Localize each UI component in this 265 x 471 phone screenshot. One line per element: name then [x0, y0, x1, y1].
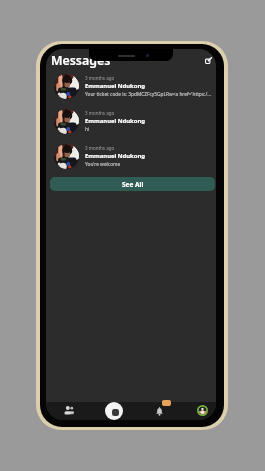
button[interactable]: Notifications — [150, 402, 168, 420]
button[interactable]: Profile — [193, 401, 211, 419]
staticText: Emmanuel Ndukong — [85, 152, 146, 160]
staticText: You're welcome — [85, 161, 121, 168]
staticText: 3 months ago — [85, 110, 115, 116]
button[interactable]: 3 months ago — [46, 104, 216, 139]
staticText: See All — [122, 180, 144, 189]
staticText: Messages — [51, 52, 111, 69]
button[interactable]: 3 months ago — [46, 69, 216, 104]
staticText: Your ticket code is: 3pdMCZFcy5GpLRw<a h… — [85, 91, 211, 98]
button[interactable]: Compose new message — [202, 54, 215, 67]
staticText: Emmanuel Ndukong — [85, 82, 146, 90]
button[interactable]: 3 months ago — [46, 139, 216, 174]
button[interactable]: Contacts — [60, 402, 78, 420]
button[interactable]: See All — [50, 177, 215, 191]
staticText: hi — [85, 126, 90, 133]
staticText: Emmanuel Ndukong — [85, 117, 146, 125]
button[interactable]: Camera — [105, 402, 123, 420]
staticText: 3 months ago — [85, 145, 115, 151]
staticText: 3 months ago — [85, 75, 115, 81]
